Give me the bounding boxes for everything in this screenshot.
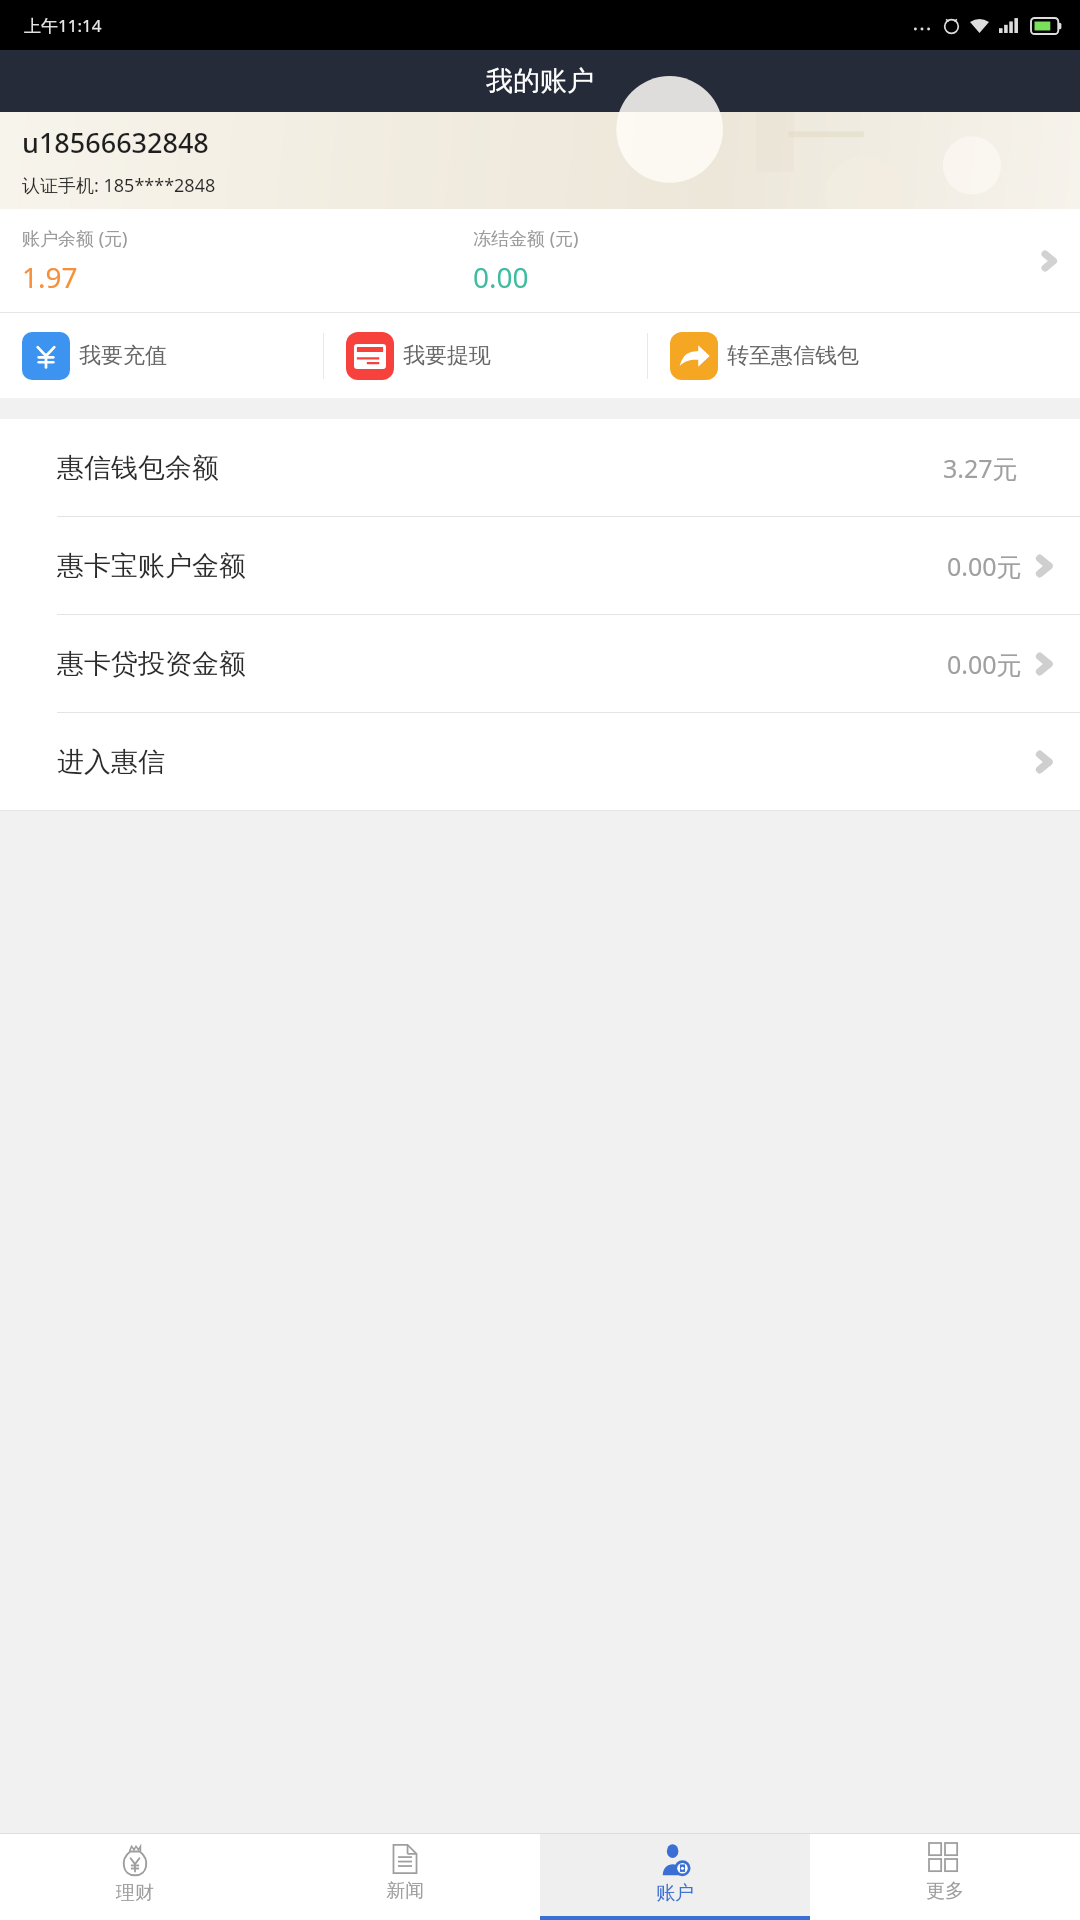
staticText: 我要提现	[403, 342, 491, 370]
button[interactable]: 我要提现	[324, 313, 647, 398]
staticText: 转至惠信钱包	[727, 342, 859, 370]
staticText: 账户	[656, 1881, 694, 1905]
button[interactable]: 惠卡贷投资金额	[0, 615, 1080, 712]
staticText: 3.27元	[943, 451, 1018, 485]
button[interactable]: 新闻	[270, 1834, 540, 1920]
staticText: 更多	[926, 1879, 964, 1903]
staticText: 认证手机: 185****2848	[22, 173, 216, 198]
staticText: 惠卡贷投资金额	[57, 647, 246, 681]
button[interactable]: 理财	[0, 1834, 270, 1920]
staticText: 冻结金额 (元)	[473, 226, 579, 251]
button[interactable]: 更多	[810, 1834, 1080, 1920]
button[interactable]: 账户	[540, 1834, 810, 1920]
staticText: 0.00	[473, 258, 529, 296]
staticText: 进入惠信	[57, 745, 165, 779]
button[interactable]: 惠信钱包余额	[0, 419, 1080, 516]
staticText: 0.00元	[947, 647, 1022, 681]
staticText: 0.00元	[947, 549, 1022, 583]
button[interactable]: 进入惠信	[0, 713, 1080, 810]
staticText: 上午11:14	[24, 14, 102, 37]
staticText: u18566632848	[22, 124, 209, 161]
staticText: 我要充值	[79, 342, 167, 370]
staticText: 惠卡宝账户金额	[57, 549, 246, 583]
staticText: 惠信钱包余额	[57, 451, 219, 485]
staticText: 理财	[116, 1881, 154, 1905]
staticText: 新闻	[386, 1879, 424, 1903]
button[interactable]: 我要充值	[0, 313, 323, 398]
staticText: 我的账户	[486, 64, 594, 98]
button[interactable]: 惠卡宝账户金额	[0, 517, 1080, 614]
staticText: 账户余额 (元)	[22, 226, 128, 251]
button[interactable]: 账户余额 (元)	[0, 209, 1080, 312]
button[interactable]: 转至惠信钱包	[648, 313, 1080, 398]
staticText: 1.97	[22, 258, 78, 296]
